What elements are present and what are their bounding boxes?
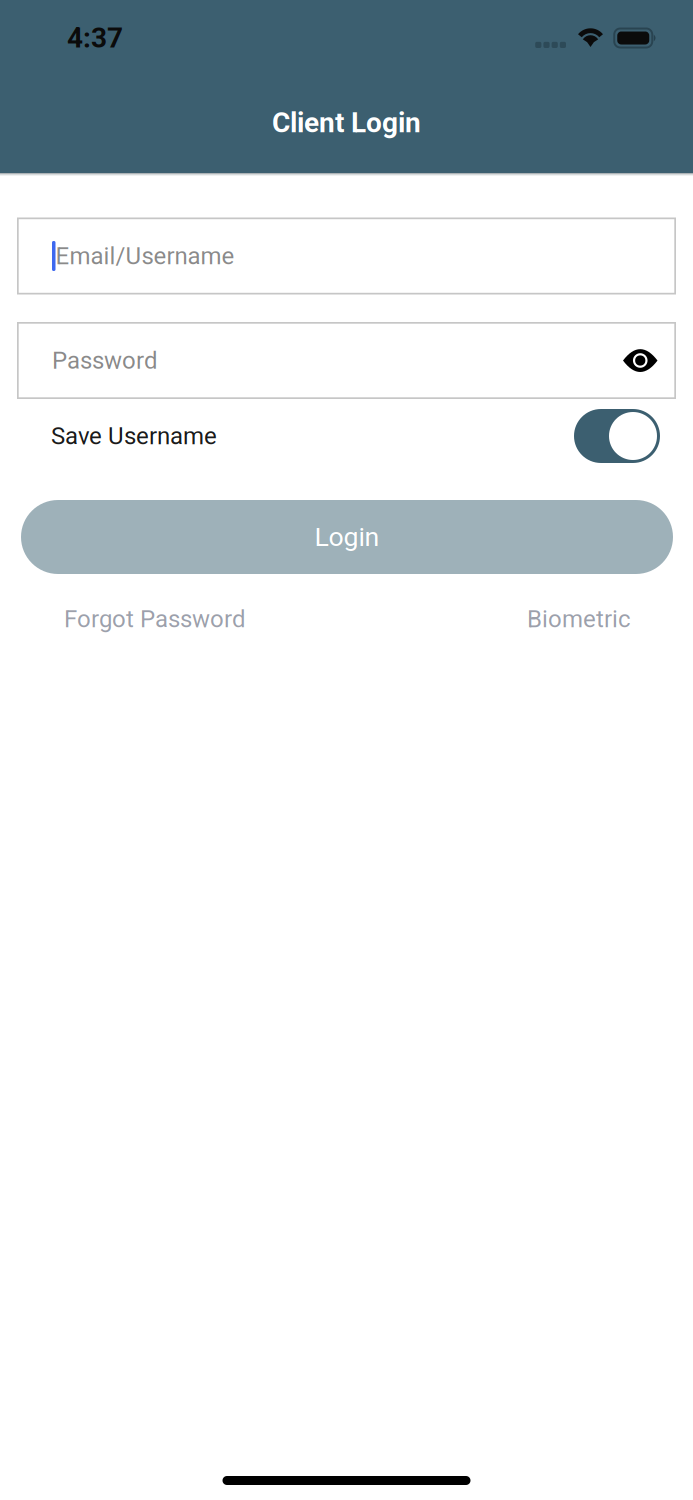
- button[interactable]: Login: [21, 500, 673, 574]
- button[interactable]: Show password: [613, 336, 667, 385]
- staticText: Biometric: [527, 605, 631, 633]
- staticText: Email/Username: [55, 242, 234, 270]
- button[interactable]: Save Username toggle: [574, 409, 660, 463]
- staticText: Client Login: [272, 106, 421, 139]
- button[interactable]: Forgot Password: [64, 605, 246, 633]
- staticText: Password: [52, 346, 158, 374]
- staticText: Login: [314, 521, 379, 553]
- staticText: Forgot Password: [64, 605, 246, 633]
- button[interactable]: Email/Username: [17, 217, 676, 294]
- staticText: Save Username: [51, 422, 217, 450]
- button[interactable]: Biometric: [527, 605, 631, 633]
- staticText: 4:37: [67, 22, 123, 54]
